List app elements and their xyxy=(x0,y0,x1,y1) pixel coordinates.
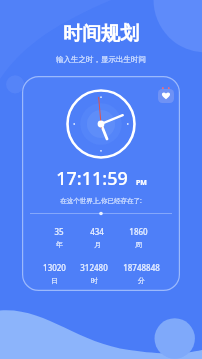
staticText: 在这个世界上,你已经存在了: xyxy=(60,196,142,205)
staticText: 时 xyxy=(91,276,98,285)
button[interactable]: 13020 xyxy=(43,262,66,285)
staticText: 周 xyxy=(135,240,142,249)
staticText: 时间规划 xyxy=(63,22,139,46)
staticText: 18748848 xyxy=(123,262,160,273)
staticText: 312480 xyxy=(80,262,108,273)
staticText: 分 xyxy=(138,276,145,285)
staticText: 13020 xyxy=(43,262,66,273)
staticText: 17:11:59 xyxy=(56,166,128,191)
button[interactable]: 434 xyxy=(90,226,104,249)
staticText: 1860 xyxy=(129,226,148,237)
staticText: 年 xyxy=(56,240,63,249)
button[interactable] xyxy=(22,76,180,291)
button[interactable]: Favorite xyxy=(158,87,174,103)
button[interactable]: 1860 xyxy=(129,226,148,249)
staticText: 月 xyxy=(94,240,101,249)
staticText: 434 xyxy=(90,226,104,237)
button[interactable]: 35 xyxy=(54,226,64,249)
staticText: PM xyxy=(136,178,147,188)
staticText: 日 xyxy=(51,276,58,285)
staticText: 输入生之时，显示出生时间 xyxy=(56,55,146,64)
button[interactable]: 312480 xyxy=(80,262,108,285)
staticText: 35 xyxy=(54,226,64,237)
button[interactable]: 18748848 xyxy=(123,262,160,285)
